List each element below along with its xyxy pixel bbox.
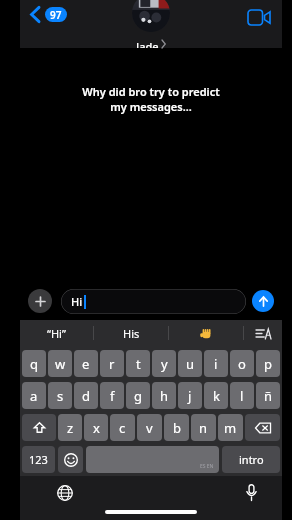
button[interactable]: f xyxy=(100,382,124,409)
staticText: o xyxy=(238,355,246,373)
staticText: ES EN xyxy=(200,463,214,470)
staticText: intro xyxy=(239,452,264,467)
staticText: v xyxy=(146,419,153,437)
staticText: Jade xyxy=(136,39,159,48)
button[interactable]: k xyxy=(204,382,228,409)
button[interactable]: r xyxy=(100,350,124,377)
button[interactable]: ñ xyxy=(256,382,280,409)
staticText: z xyxy=(67,419,74,437)
button[interactable]: 123 xyxy=(22,446,55,473)
staticText: i xyxy=(214,355,218,373)
button[interactable]: n xyxy=(191,414,216,441)
button[interactable]: j xyxy=(178,382,202,409)
button[interactable]: b xyxy=(164,414,189,441)
staticText: g xyxy=(134,387,142,405)
button[interactable]: Shift xyxy=(22,414,56,441)
button[interactable]: Send message xyxy=(252,290,274,312)
button[interactable]: “Hi” xyxy=(20,320,93,346)
staticText: “Hi” xyxy=(47,326,66,341)
button[interactable]: w xyxy=(48,350,72,377)
staticText: Why did bro try to predict my messages..… xyxy=(20,84,282,114)
button[interactable]: e xyxy=(74,350,98,377)
button[interactable]: Dictate xyxy=(243,481,260,504)
button[interactable]: g xyxy=(126,382,150,409)
button[interactable]: His xyxy=(94,320,168,346)
staticText: t xyxy=(136,355,141,373)
button[interactable]: t xyxy=(126,350,150,377)
button[interactable]: More options xyxy=(28,289,52,313)
button[interactable]: m xyxy=(218,414,243,441)
button[interactable]: z xyxy=(58,414,82,441)
button[interactable]: Space xyxy=(86,446,219,473)
button[interactable]: o xyxy=(230,350,254,377)
staticText: n xyxy=(199,419,208,437)
staticText: e xyxy=(82,355,90,373)
button[interactable]: u xyxy=(178,350,202,377)
button[interactable]: i xyxy=(204,350,228,377)
staticText: u xyxy=(186,355,195,373)
button[interactable]: Switch keyboard language xyxy=(54,482,76,504)
staticText: y xyxy=(161,355,168,373)
staticText: Hi xyxy=(71,294,83,309)
button[interactable]: Waving hand emoji xyxy=(169,320,243,346)
button[interactable]: Emoji keyboard xyxy=(58,446,83,473)
button[interactable]: h xyxy=(152,382,176,409)
button[interactable]: a xyxy=(22,382,46,409)
staticText: s xyxy=(57,387,64,405)
staticText: r xyxy=(109,355,115,373)
button[interactable]: p xyxy=(256,350,280,377)
button[interactable]: Text formatting xyxy=(244,320,282,346)
button[interactable]: Hi xyxy=(61,289,246,314)
button[interactable]: v xyxy=(137,414,162,441)
button[interactable]: FaceTime video call xyxy=(244,6,274,29)
button[interactable]: d xyxy=(74,382,98,409)
staticText: x xyxy=(93,419,100,437)
staticText: m xyxy=(224,419,237,437)
staticText: b xyxy=(173,419,181,437)
staticText: k xyxy=(213,387,220,405)
staticText: p xyxy=(264,355,272,373)
staticText: a xyxy=(30,387,38,405)
staticText: w xyxy=(55,355,66,373)
button[interactable]: intro xyxy=(222,446,280,473)
staticText: 97 xyxy=(50,8,62,22)
staticText: c xyxy=(119,419,126,437)
button[interactable]: x xyxy=(84,414,108,441)
staticText: His xyxy=(123,326,140,341)
staticText: 123 xyxy=(29,452,48,467)
button[interactable]: y xyxy=(152,350,176,377)
button[interactable]: q xyxy=(22,350,46,377)
button[interactable]: s xyxy=(48,382,72,409)
button[interactable]: Jade xyxy=(132,0,170,48)
staticText: h xyxy=(160,387,169,405)
staticText: j xyxy=(188,387,192,405)
staticText: f xyxy=(110,387,115,405)
staticText: d xyxy=(82,387,90,405)
button[interactable]: Backspace xyxy=(245,414,280,441)
button[interactable]: l xyxy=(230,382,254,409)
button[interactable]: Back to conversations xyxy=(26,2,71,27)
staticText: q xyxy=(30,355,38,373)
button[interactable]: c xyxy=(110,414,135,441)
staticText: l xyxy=(240,387,244,405)
staticText: ñ xyxy=(264,387,273,405)
